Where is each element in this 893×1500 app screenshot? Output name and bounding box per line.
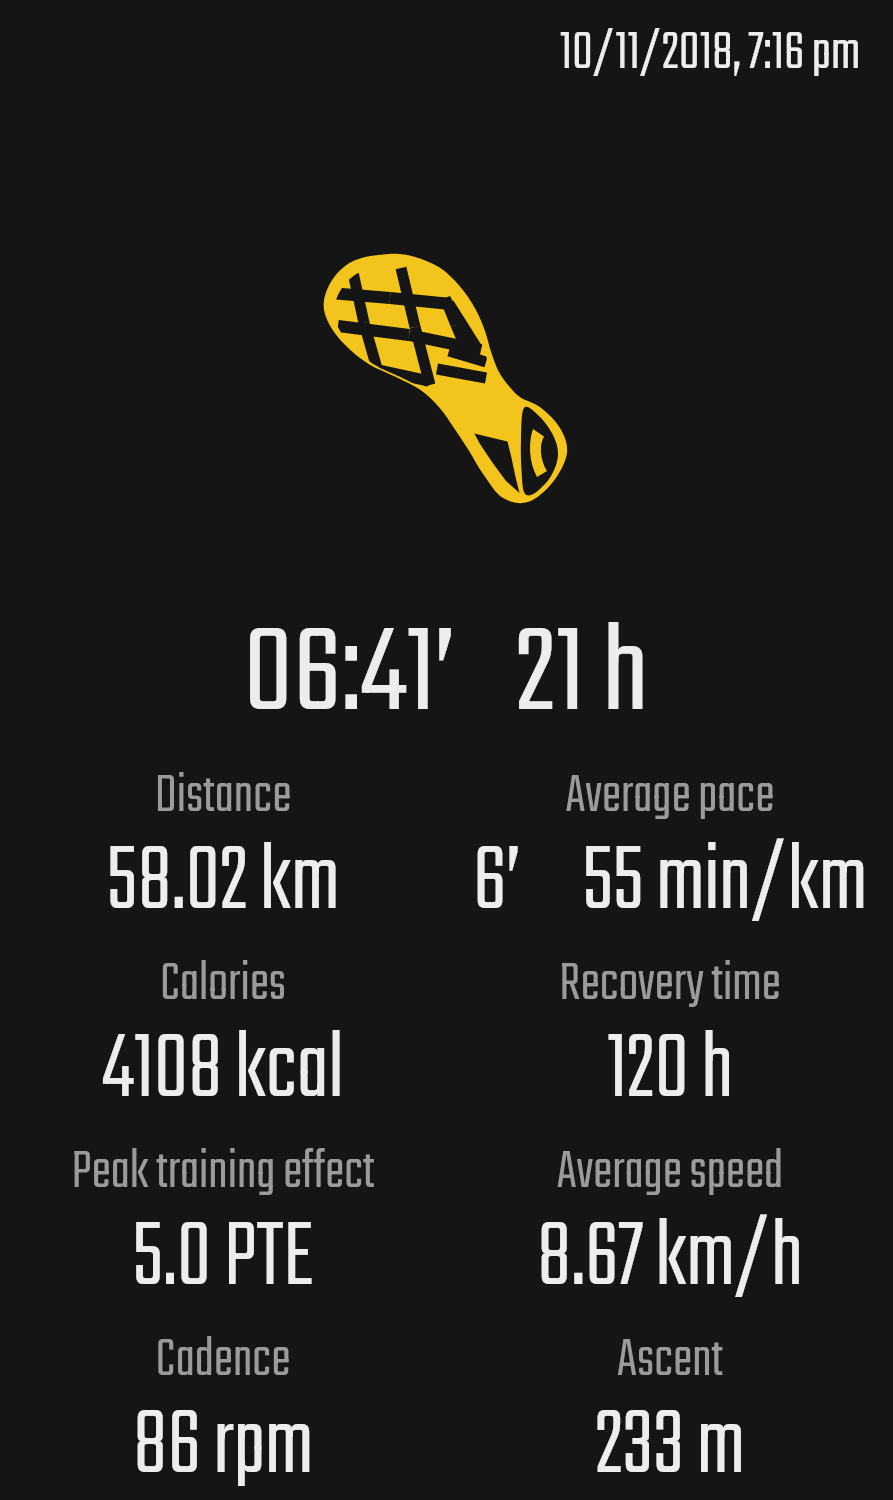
staticText: Average pace (221, 756, 893, 838)
staticText: Calories (0, 944, 672, 1026)
staticText: 8.67 km/h (241, 1190, 893, 1330)
staticText: Distance (0, 756, 672, 838)
staticText: 86 rpm (0, 1378, 652, 1500)
staticText: 5.0 PTE (0, 1190, 652, 1330)
staticText: 6’ 55 min/km (241, 814, 893, 954)
other: Running activity (0, 0, 893, 1500)
staticText: 10/11/2018, 7:16 pm (0, 12, 860, 95)
staticText: 120 h (241, 1002, 893, 1142)
staticText: 4108 kcal (0, 1002, 652, 1142)
staticText: Cadence (0, 1320, 672, 1402)
staticText: Peak training effect (0, 1132, 672, 1214)
staticText: 58.02 km (0, 814, 652, 954)
staticText: 06:41’ (0, 585, 820, 770)
staticText: 233 m (241, 1378, 893, 1500)
staticText: Recovery time (221, 944, 893, 1026)
staticText: Ascent (221, 1320, 893, 1402)
staticText: Average speed (221, 1132, 893, 1214)
staticText: 21 h (111, 585, 893, 770)
button[interactable]: 10/11/2018, 7:16 pm (0, 12, 893, 95)
